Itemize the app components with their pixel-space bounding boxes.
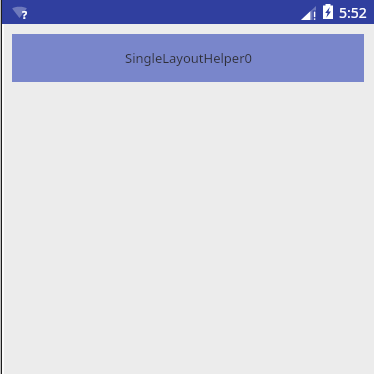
staticText: ? bbox=[22, 7, 28, 19]
staticText: 5:52 bbox=[339, 3, 367, 22]
other: Battery charging bbox=[323, 4, 333, 19]
other: Mobile signal bbox=[301, 6, 316, 20]
staticText: SingleLayoutHelper0 bbox=[125, 49, 252, 67]
other: Wi-Fi unknown bbox=[12, 6, 27, 18]
button[interactable]: SingleLayoutHelper0 bbox=[12, 34, 364, 82]
